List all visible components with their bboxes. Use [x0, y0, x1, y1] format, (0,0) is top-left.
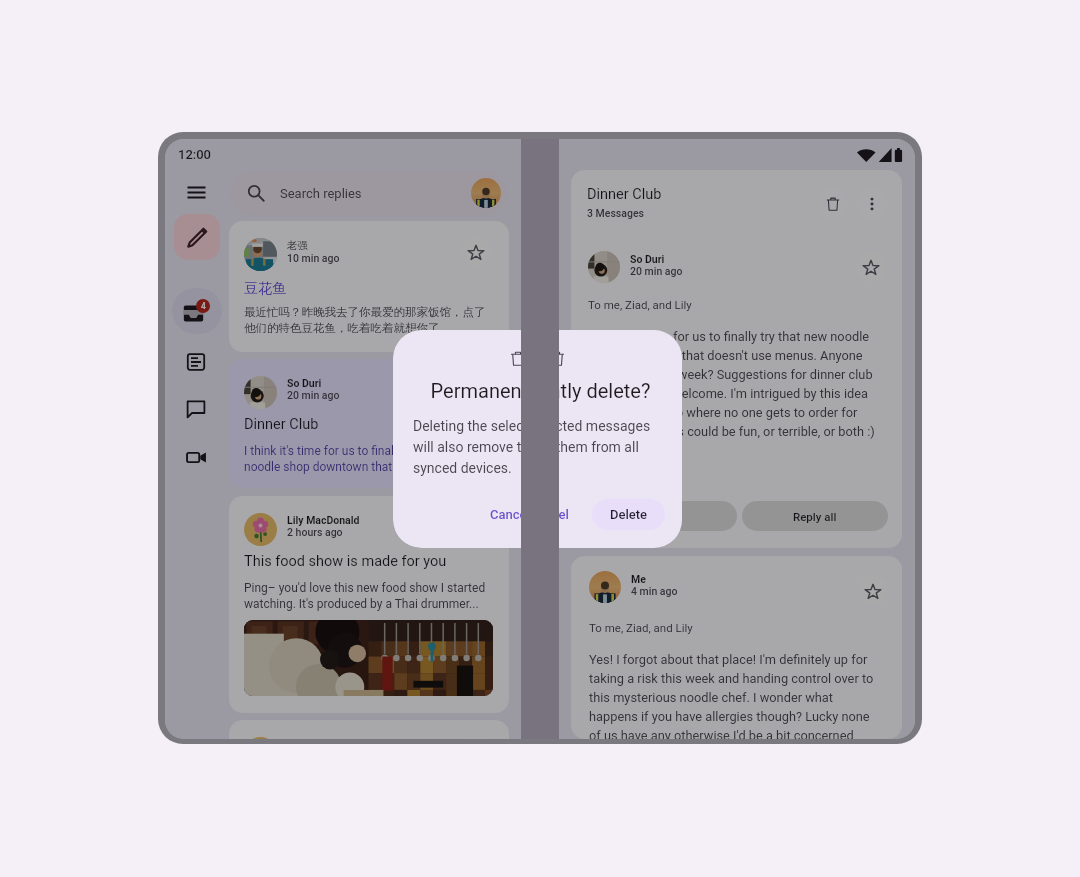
- staticText: Dinner Club: [244, 416, 319, 433]
- button[interactable]: Video call: [179, 440, 213, 474]
- button[interactable]: Reply all: [742, 501, 888, 531]
- button[interactable]: Compose: [174, 214, 220, 260]
- button[interactable]: Articles: [179, 345, 213, 379]
- staticText: Cancel: [529, 507, 569, 522]
- staticText: 4: [201, 301, 206, 311]
- staticText: Permanently delete?: [396, 379, 522, 402]
- staticText: 最近忙吗？昨晚我去了你最爱的那家饭馆，点了他们的特色豆花鱼，吃着吃着就想你了: [244, 305, 486, 335]
- staticText: Dinner Club: [587, 186, 662, 203]
- button[interactable]: Delete: [818, 189, 848, 219]
- staticText: Me: [631, 573, 646, 585]
- button[interactable]: Delete: [592, 499, 665, 530]
- button[interactable]: Chat: [179, 392, 213, 426]
- staticText: Cancel: [490, 507, 522, 522]
- staticText: Reply all: [793, 510, 837, 523]
- staticText: Lily MacDonald: [287, 514, 360, 526]
- staticText: 12:00: [178, 147, 212, 162]
- button[interactable]: Reply: [588, 501, 737, 531]
- button[interactable]: Cancel: [478, 498, 522, 530]
- staticText: So Duri: [287, 377, 322, 389]
- staticText: 20 min ago: [630, 265, 683, 277]
- staticText: Delete: [610, 507, 648, 522]
- button[interactable]: Inbox: [172, 288, 222, 334]
- staticText: So Duri: [630, 253, 665, 265]
- staticText: This food show is made for you: [244, 553, 447, 570]
- button[interactable]: Star: [858, 576, 888, 606]
- staticText: 3 Messages: [587, 207, 644, 219]
- staticText: I think it's time for us to finally try …: [244, 444, 489, 474]
- button[interactable]: So Duri: [229, 359, 509, 488]
- staticText: Reply: [648, 510, 677, 523]
- staticText: Search replies: [280, 186, 362, 201]
- staticText: Yes! I forgot about that place! I'm defi…: [589, 652, 877, 739]
- button[interactable]: Star: [461, 237, 491, 267]
- staticText: 4 min ago: [631, 585, 678, 597]
- button[interactable]: Search replies: [230, 171, 508, 215]
- button[interactable]: Star: [856, 252, 886, 282]
- staticText: 老强: [287, 239, 308, 252]
- button[interactable]: 老强: [229, 221, 509, 352]
- button[interactable]: Menu: [179, 175, 213, 209]
- staticText: 20 min ago: [287, 389, 340, 401]
- staticText: I think it's time for us to finally try …: [588, 329, 876, 439]
- staticText: 2 hours ago: [287, 526, 343, 538]
- staticText: Permanently delete?: [435, 379, 682, 402]
- button[interactable]: Star: [229, 720, 509, 739]
- button[interactable]: More options: [857, 189, 887, 219]
- button[interactable]: Cancel: [517, 498, 580, 530]
- staticText: Ping– you'd love this new food show I st…: [244, 581, 494, 611]
- button[interactable]: Lily MacDonald: [229, 496, 509, 713]
- staticText: To me, Ziad, and Lily: [589, 621, 693, 634]
- staticText: 豆花鱼: [244, 280, 286, 298]
- staticText: Deleting the selected messages will also…: [452, 418, 656, 476]
- staticText: To me, Ziad, and Lily: [588, 298, 692, 311]
- staticText: Deleting the selected messages will also…: [413, 418, 522, 476]
- staticText: 10 min ago: [287, 252, 340, 264]
